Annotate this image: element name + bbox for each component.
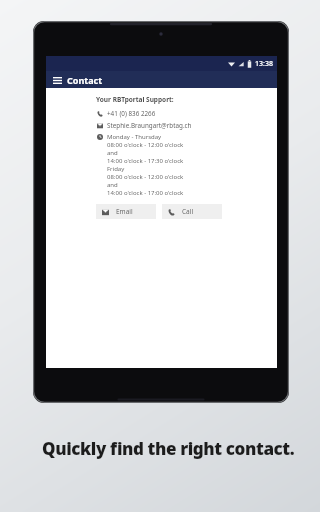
staticText: Friday [107, 165, 125, 173]
staticText: +41 (0) 836 2266 [107, 109, 156, 118]
staticText: 14:00 o'clock - 17:00 o'clock [107, 189, 184, 197]
staticText: Call [182, 207, 194, 216]
staticText: Contact [67, 74, 103, 86]
staticText: Quickly find the right contact. [42, 437, 295, 460]
staticText: Stephie.Braungart@rbtag.ch [107, 121, 192, 130]
staticText: Email [116, 207, 133, 216]
staticText: 08:00 o'clock - 12:00 o'clock [107, 173, 184, 181]
staticText: 14:00 o'clock - 17:30 o'clock [107, 157, 184, 165]
staticText: and [107, 181, 118, 189]
staticText: 13:38 [255, 59, 273, 69]
button[interactable]: Open navigation menu [50, 73, 64, 87]
staticText: Your RBTportal Support: [96, 95, 174, 104]
staticText: 08:00 o'clock - 12:00 o'clock [107, 141, 184, 149]
staticText: and [107, 149, 118, 157]
button[interactable]: Email [96, 204, 156, 219]
staticText: Monday - Thursday [107, 133, 162, 141]
button[interactable]: Call [162, 204, 222, 219]
